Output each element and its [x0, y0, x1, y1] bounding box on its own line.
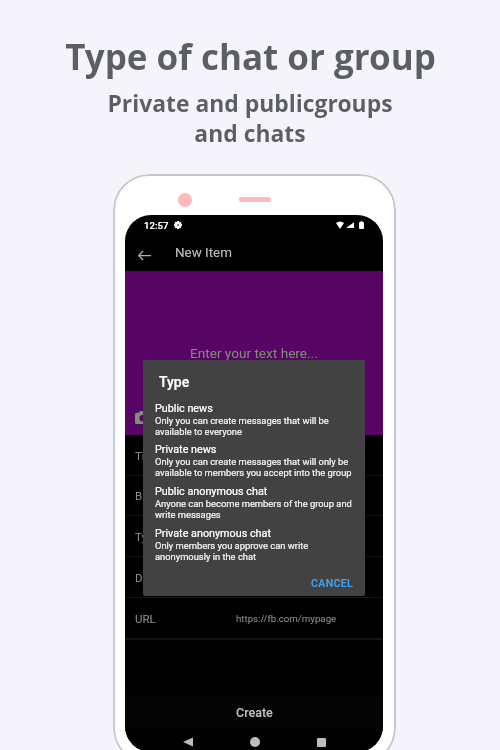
staticText: Private anonymous chat [155, 527, 271, 540]
staticText: Type [159, 374, 190, 390]
staticText: Private and publicgroups and chats [107, 88, 393, 148]
staticText: Bio [135, 489, 152, 502]
staticText: Private news [155, 443, 217, 456]
staticText: Type [135, 530, 160, 543]
staticText: Only you can create messages that will o… [155, 456, 352, 478]
staticText: Enter your text here... [190, 345, 318, 361]
staticText: Create [236, 705, 273, 720]
button[interactable]: CANCEL [300, 570, 365, 596]
staticText: Public anonymous chat [155, 485, 268, 498]
button[interactable]: Public anonymous chat [143, 485, 365, 520]
button[interactable]: Back [177, 731, 199, 750]
staticText: Anyone can become members of the group a… [155, 498, 352, 520]
button[interactable]: Bio [125, 475, 383, 516]
staticText: New Item [175, 245, 232, 261]
staticText: Only you can create messages that will b… [155, 415, 329, 437]
button[interactable]: Public news [143, 402, 365, 437]
staticText: Public news [155, 402, 213, 415]
staticText: Only members you approve can write anony… [155, 540, 309, 562]
button[interactable]: Back [131, 242, 157, 268]
staticText: URL [135, 612, 156, 625]
staticText: https://fb.com/mypage [236, 613, 337, 624]
button[interactable]: Private news [143, 443, 365, 478]
button[interactable]: Add photo [135, 411, 149, 424]
button[interactable]: URL [125, 598, 383, 639]
button[interactable]: Type [125, 516, 383, 557]
button[interactable]: Private anonymous chat [143, 527, 365, 562]
staticText: CANCEL [311, 577, 354, 589]
button[interactable]: Recent apps [310, 731, 332, 750]
button[interactable]: Description [125, 557, 383, 598]
staticText: Type of chat or group [65, 33, 436, 81]
button[interactable]: Home [244, 731, 266, 750]
staticText: Description [135, 571, 194, 584]
staticText: Title [135, 449, 158, 462]
staticText: 12:57 [144, 220, 169, 231]
button[interactable]: Title [125, 435, 383, 476]
button[interactable]: Create [125, 695, 383, 729]
